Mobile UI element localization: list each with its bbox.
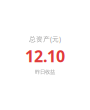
staticText: 昨日收益: [35, 69, 55, 75]
staticText: 12.10: [25, 45, 65, 67]
staticText: 总资产(元): [29, 35, 61, 44]
